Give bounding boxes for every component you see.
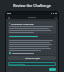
button[interactable]: More options: [54, 16, 57, 19]
staticText: Continue Quiz: [25, 57, 40, 60]
button[interactable]: Continue Quiz: [8, 56, 56, 60]
staticText: Challenge Overview: [11, 22, 34, 25]
button[interactable]: Submit: [49, 68, 56, 71]
button[interactable]: Back: [7, 16, 10, 19]
button[interactable]: Challenge Overview: [8, 21, 56, 34]
staticText: Your Next Step: [9, 63, 25, 65]
button[interactable]: [8, 39, 56, 55]
button[interactable]: [8, 35, 56, 38]
button[interactable]: Your Next Step: [8, 62, 56, 66]
staticText: Review the Challenge: [13, 3, 51, 8]
